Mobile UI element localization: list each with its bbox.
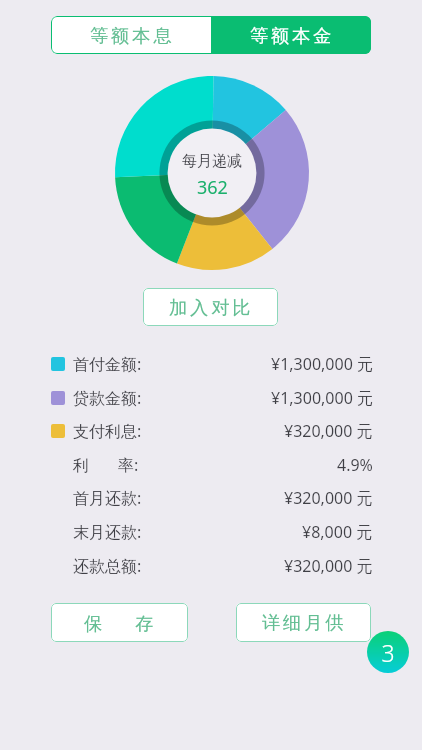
button[interactable]: Compare list, 3 items: [367, 631, 409, 673]
staticText: 每月递减: [182, 152, 242, 171]
staticText: ¥1,300,000 元: [271, 387, 373, 409]
staticText: 3: [381, 637, 395, 668]
button[interactable]: 还款总额:: [51, 549, 373, 583]
button[interactable]: 首付金额:: [51, 347, 373, 381]
button[interactable]: 首月还款:: [51, 481, 373, 515]
staticText: 362: [197, 175, 228, 200]
button[interactable]: 等额本息: [51, 16, 211, 54]
staticText: 首月还款:: [73, 487, 142, 509]
button[interactable]: 支付利息:: [51, 414, 373, 448]
staticText: 4.9%: [337, 454, 373, 476]
staticText: 详细月供: [262, 611, 347, 634]
staticText: 还款总额:: [73, 555, 142, 577]
staticText: ¥320,000 元: [284, 555, 373, 577]
button[interactable]: 详细月供: [236, 603, 371, 642]
staticText: ¥8,000 元: [302, 521, 373, 543]
staticText: ¥1,300,000 元: [271, 353, 373, 375]
button[interactable]: 末月还款:: [51, 515, 373, 549]
staticText: 保 存: [84, 610, 157, 635]
staticText: 利 率:: [73, 454, 139, 476]
staticText: 末月还款:: [73, 521, 142, 543]
button[interactable]: 保 存: [51, 603, 188, 642]
button[interactable]: 等额本金: [211, 16, 371, 54]
staticText: ¥320,000 元: [284, 487, 373, 509]
staticText: ¥320,000 元: [284, 420, 373, 442]
staticText: 贷款金额:: [73, 387, 142, 409]
staticText: 等额本金: [250, 24, 335, 47]
button[interactable]: 贷款金额:: [51, 381, 373, 415]
staticText: 等额本息: [90, 24, 175, 47]
staticText: 支付利息:: [73, 420, 142, 442]
staticText: 首付金额:: [73, 353, 142, 375]
staticText: 加入对比: [169, 296, 254, 319]
button[interactable]: 加入对比: [143, 288, 278, 326]
button[interactable]: 利 率:: [51, 448, 373, 482]
